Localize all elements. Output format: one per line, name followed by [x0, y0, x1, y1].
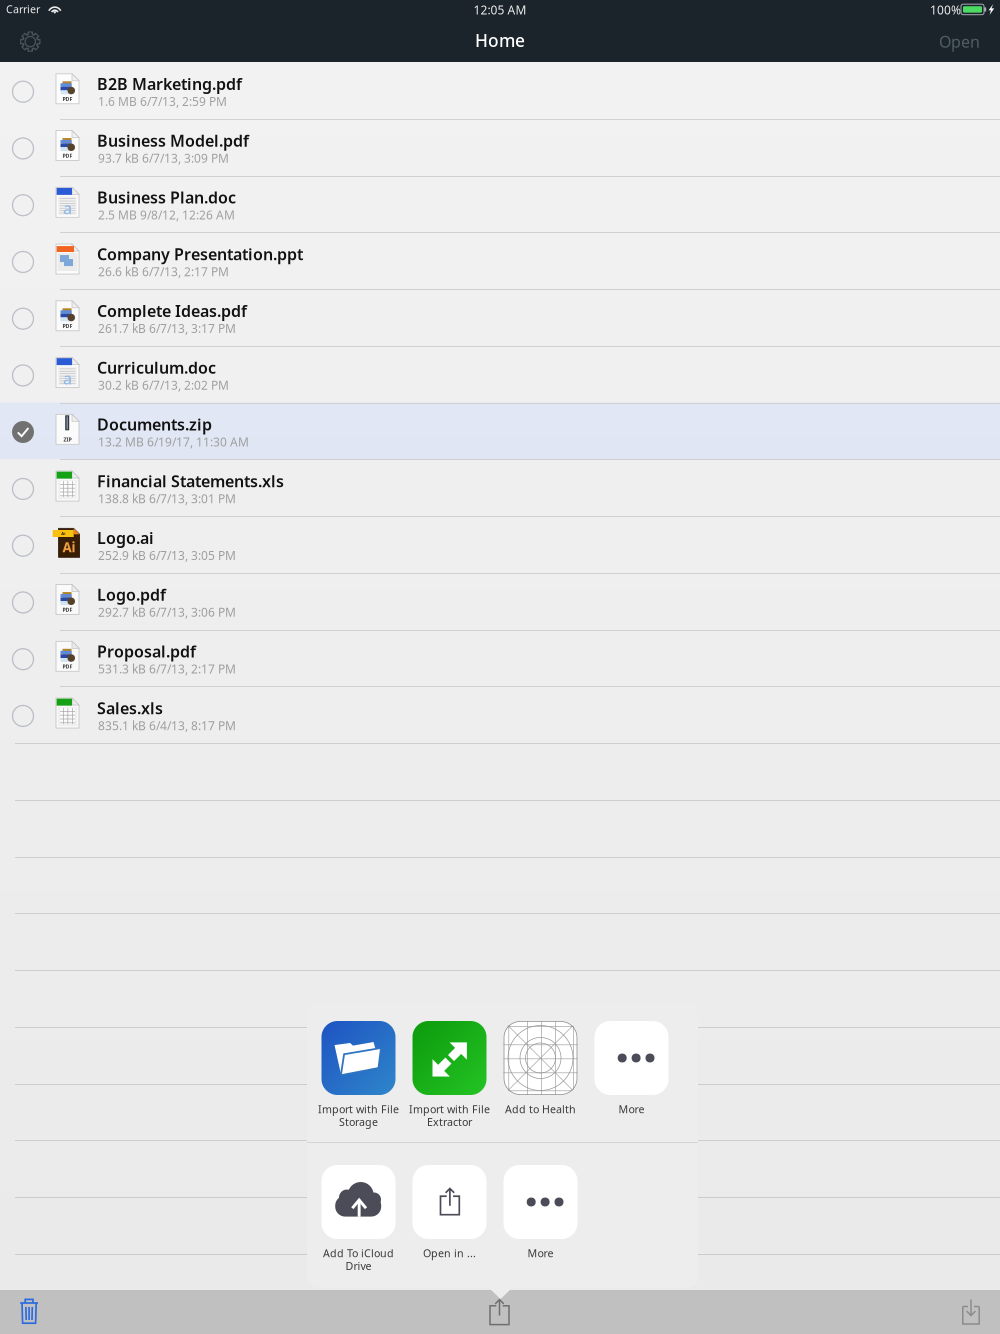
- staticText: 12:05 AM: [473, 2, 526, 18]
- button[interactable]: a: [0, 175, 1000, 232]
- staticText: Sales.xls: [97, 697, 163, 719]
- staticText: More: [618, 1102, 644, 1116]
- staticText: a: [63, 197, 72, 218]
- button[interactable]: Import with File: [404, 1021, 495, 1133]
- staticText: More: [527, 1246, 553, 1260]
- staticText: PDF: [62, 95, 72, 102]
- staticText: Carrier: [6, 2, 40, 16]
- staticText: Documents.zip: [97, 414, 212, 435]
- button[interactable]: Import with File: [313, 1021, 404, 1133]
- staticText: 292.7 kB 6/7/13, 3:06 PM: [98, 604, 236, 620]
- staticText: Company Presentation.ppt: [97, 243, 303, 265]
- staticText: Import with File: [318, 1102, 399, 1116]
- staticText: PDF: [62, 606, 72, 613]
- button[interactable]: Company Presentation.ppt: [0, 232, 1000, 289]
- staticText: Storage: [339, 1115, 378, 1129]
- staticText: PDF: [62, 322, 72, 329]
- staticText: ZIP: [63, 436, 71, 443]
- staticText: 100%: [930, 2, 961, 18]
- button[interactable]: Open in ...: [404, 1165, 495, 1277]
- staticText: Logo.pdf: [97, 584, 166, 605]
- button[interactable]: Save: [949, 1290, 993, 1334]
- staticText: a: [63, 368, 72, 389]
- button[interactable]: Add to Health: [495, 1021, 586, 1133]
- staticText: Add to Health: [505, 1102, 576, 1116]
- staticText: 261.7 kB 6/7/13, 3:17 PM: [98, 320, 236, 336]
- staticText: Ai: [61, 531, 65, 536]
- button[interactable]: Financial Statements.xls: [0, 459, 1000, 516]
- button[interactable]: Sales.xls: [0, 686, 1000, 743]
- staticText: 835.1 kB 6/4/13, 8:17 PM: [98, 718, 236, 733]
- button[interactable]: PDF: [0, 119, 1000, 176]
- staticText: Open: [939, 31, 980, 52]
- staticText: Business Plan.doc: [97, 187, 236, 208]
- staticText: 2.5 MB 9/8/12, 12:26 AM: [98, 207, 235, 223]
- staticText: 93.7 kB 6/7/13, 3:09 PM: [98, 150, 229, 166]
- button[interactable]: More: [586, 1021, 677, 1133]
- staticText: 13.2 MB 6/19/17, 11:30 AM: [98, 434, 249, 450]
- button[interactable]: a: [0, 346, 1000, 403]
- staticText: Proposal.pdf: [97, 641, 196, 662]
- staticText: PDF: [62, 663, 72, 670]
- staticText: Home: [475, 29, 525, 52]
- button[interactable]: PDF: [0, 289, 1000, 346]
- staticText: 1.6 MB 6/7/13, 2:59 PM: [98, 93, 227, 109]
- staticText: 252.9 kB 6/7/13, 3:05 PM: [98, 547, 236, 563]
- button[interactable]: PDF: [0, 629, 1000, 686]
- button[interactable]: PDF: [0, 573, 1000, 630]
- button[interactable]: Settings: [8, 22, 52, 62]
- staticText: Open in ...: [423, 1246, 476, 1260]
- staticText: Logo.ai: [97, 527, 154, 548]
- staticText: B2B Marketing.pdf: [97, 73, 242, 94]
- staticText: Complete Ideas.pdf: [97, 300, 247, 321]
- staticText: 26.6 kB 6/7/13, 2:17 PM: [98, 264, 229, 279]
- button[interactable]: ZIP: [0, 402, 1000, 459]
- staticText: 138.8 kB 6/7/13, 3:01 PM: [98, 491, 236, 506]
- staticText: Financial Statements.xls: [97, 470, 284, 492]
- staticText: Ai: [63, 538, 76, 556]
- staticText: Add To iCloud: [323, 1246, 394, 1260]
- button[interactable]: Add To iCloud: [313, 1165, 404, 1277]
- button[interactable]: Share: [478, 1290, 522, 1334]
- staticText: Extractor: [427, 1115, 472, 1129]
- button[interactable]: Open: [920, 21, 980, 61]
- button[interactable]: Ai: [0, 516, 1000, 573]
- staticText: PDF: [62, 152, 72, 159]
- button[interactable]: PDF: [0, 62, 1000, 119]
- staticText: Drive: [345, 1259, 371, 1273]
- staticText: Curriculum.doc: [97, 357, 216, 378]
- button[interactable]: More: [495, 1165, 586, 1277]
- staticText: 30.2 kB 6/7/13, 2:02 PM: [98, 377, 229, 393]
- staticText: Import with File: [409, 1102, 490, 1116]
- staticText: 531.3 kB 6/7/13, 2:17 PM: [98, 661, 236, 677]
- staticText: Business Model.pdf: [97, 130, 249, 151]
- button[interactable]: Delete: [7, 1290, 51, 1334]
